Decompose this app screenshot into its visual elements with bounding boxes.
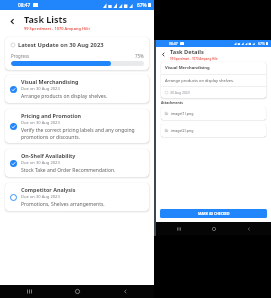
staticText: 30 Aug 2023 <box>170 90 190 95</box>
button[interactable]: Visual Merchandising <box>5 75 149 103</box>
staticText: Competitor Analysis <box>21 186 76 193</box>
staticText: image(2).png <box>171 128 194 133</box>
staticText: Due on 30 Aug 2023 <box>21 86 60 92</box>
staticText: On-Shelf Availability <box>21 152 76 159</box>
staticText: Arrange products on display shelves. <box>165 78 235 83</box>
button[interactable]: Back <box>101 285 149 298</box>
staticText: 99 Speedmart - 1070 Ampang Hilir <box>24 26 91 31</box>
button[interactable]: Competitor Analysis <box>5 183 149 211</box>
staticText: Latest Update on 30 Aug 2023 <box>18 41 104 49</box>
button[interactable]: Recents <box>161 222 196 235</box>
staticText: Arrange products on display shelves. <box>21 93 108 100</box>
staticText: Attachments <box>161 100 183 105</box>
staticText: image(1).png <box>171 111 194 116</box>
staticText: Due on 30 Aug 2023 <box>21 120 60 126</box>
staticText: Task Lists <box>24 13 67 25</box>
button[interactable]: On-Shelf Availability <box>5 149 149 177</box>
staticText: Due on 30 Aug 2023 <box>21 160 60 166</box>
staticText: 75% <box>135 53 144 59</box>
button[interactable]: Home <box>53 285 101 298</box>
staticText: Promotions, Shelves arrangements. <box>21 201 105 208</box>
staticText: Due on 30 Aug 2023 <box>21 194 60 200</box>
button[interactable]: Pricing and Promotion <box>5 109 149 143</box>
button[interactable]: Back <box>231 222 266 235</box>
staticText: Stock Take and Order Recommendation. <box>21 167 116 174</box>
staticText: 08:47 <box>169 41 178 46</box>
button[interactable]: Home <box>196 222 231 235</box>
button[interactable]: Back <box>156 47 170 61</box>
staticText: 99 Speedmart - 1070 Ampang Hilir <box>170 57 218 61</box>
staticText: Progress <box>11 53 30 59</box>
staticText: 67% <box>137 2 147 9</box>
button[interactable]: Back <box>0 10 24 33</box>
staticText: Pricing and Promotion <box>21 112 82 119</box>
staticText: 08:47 <box>18 2 31 9</box>
button[interactable]: Recents <box>5 285 53 298</box>
button[interactable]: image(1).png <box>161 107 266 120</box>
staticText: Visual Merchandising <box>165 65 210 71</box>
staticText: MARK AS CHECKED <box>198 211 230 216</box>
staticText: Verify the correct pricing labels and an… <box>21 127 143 140</box>
staticText: 67% <box>258 41 265 46</box>
staticText: Task Details <box>170 48 204 56</box>
staticText: Visual Merchandising <box>21 78 79 85</box>
button[interactable]: image(2).png <box>161 124 266 137</box>
button[interactable]: MARK AS CHECKED <box>160 209 267 218</box>
